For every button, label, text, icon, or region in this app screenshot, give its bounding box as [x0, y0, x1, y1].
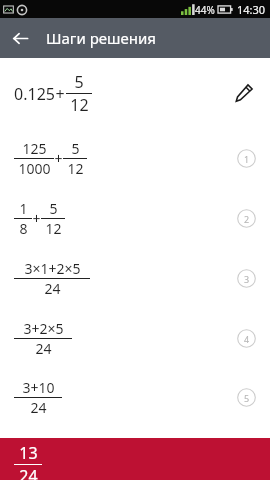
staticText: 24	[44, 279, 61, 298]
staticText: 12	[45, 219, 62, 238]
staticText: 44%	[195, 3, 215, 17]
staticText: 1	[244, 153, 250, 165]
button[interactable]: 13	[0, 438, 270, 480]
button[interactable]: Edit expression	[226, 75, 262, 111]
staticText: 5	[244, 392, 250, 404]
staticText: +	[32, 209, 41, 228]
button[interactable]: 3×1+2×5	[0, 248, 270, 308]
button[interactable]: 3+2×5	[0, 308, 270, 368]
staticText: 1	[19, 199, 28, 218]
button[interactable]: 1	[0, 188, 270, 248]
staticText: 3×1+2×5	[24, 259, 81, 278]
staticText: Шаги решения	[46, 28, 156, 48]
staticText: 24	[35, 339, 52, 358]
staticText: +	[54, 149, 63, 168]
staticText: 0.125	[14, 83, 55, 105]
staticText: 125	[22, 139, 47, 158]
staticText: 2	[244, 213, 250, 225]
staticText: 8	[19, 219, 28, 238]
button[interactable]: 3+10	[0, 368, 270, 426]
staticText: 5	[74, 71, 84, 93]
staticText: 14:30	[237, 2, 266, 17]
staticText: 4	[244, 333, 250, 345]
staticText: 12	[67, 159, 84, 178]
staticText: 5	[71, 139, 80, 158]
staticText: 24	[30, 398, 47, 417]
staticText: 5	[49, 199, 58, 218]
staticText: 12	[70, 94, 89, 116]
staticText: 1000	[18, 159, 51, 178]
staticText: 3+2×5	[23, 319, 64, 338]
staticText: +	[55, 83, 65, 105]
staticText: 3+10	[22, 378, 55, 397]
staticText: 13	[19, 442, 38, 464]
button[interactable]: Back	[0, 18, 40, 58]
button[interactable]: 125	[0, 128, 270, 188]
staticText: 24	[19, 465, 38, 480]
staticText: 3	[244, 273, 250, 285]
